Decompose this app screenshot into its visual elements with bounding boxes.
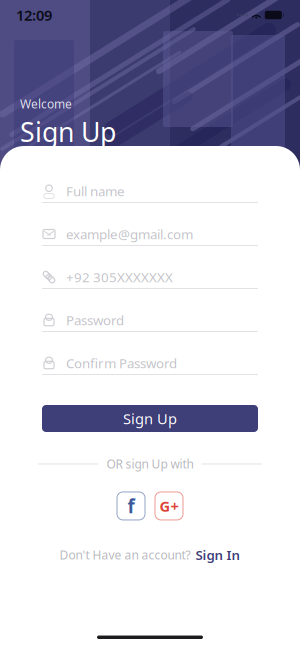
- staticText: OR sign Up with: [106, 456, 193, 472]
- staticText: Sign Up: [20, 114, 116, 149]
- button[interactable]: Sign In: [195, 546, 240, 564]
- staticText: Welcome: [20, 96, 72, 112]
- staticText: Full name: [66, 182, 125, 200]
- staticText: +92 305XXXXXXX: [66, 268, 173, 286]
- staticText: Don't Have an account?: [59, 547, 190, 563]
- staticText: G+: [159, 496, 178, 516]
- staticText: Confirm Password: [66, 354, 177, 372]
- staticText: f: [127, 493, 134, 518]
- staticText: Sign In: [195, 546, 240, 564]
- button[interactable]: Sign Up: [42, 405, 258, 432]
- staticText: Password: [66, 311, 124, 329]
- button[interactable]: Sign up with Facebook: [117, 492, 145, 520]
- staticText: Sign Up: [123, 409, 177, 428]
- staticText: 12:09: [16, 5, 52, 25]
- staticText: example@gmail.com: [66, 225, 193, 243]
- button[interactable]: Sign up with Google: [155, 492, 183, 520]
